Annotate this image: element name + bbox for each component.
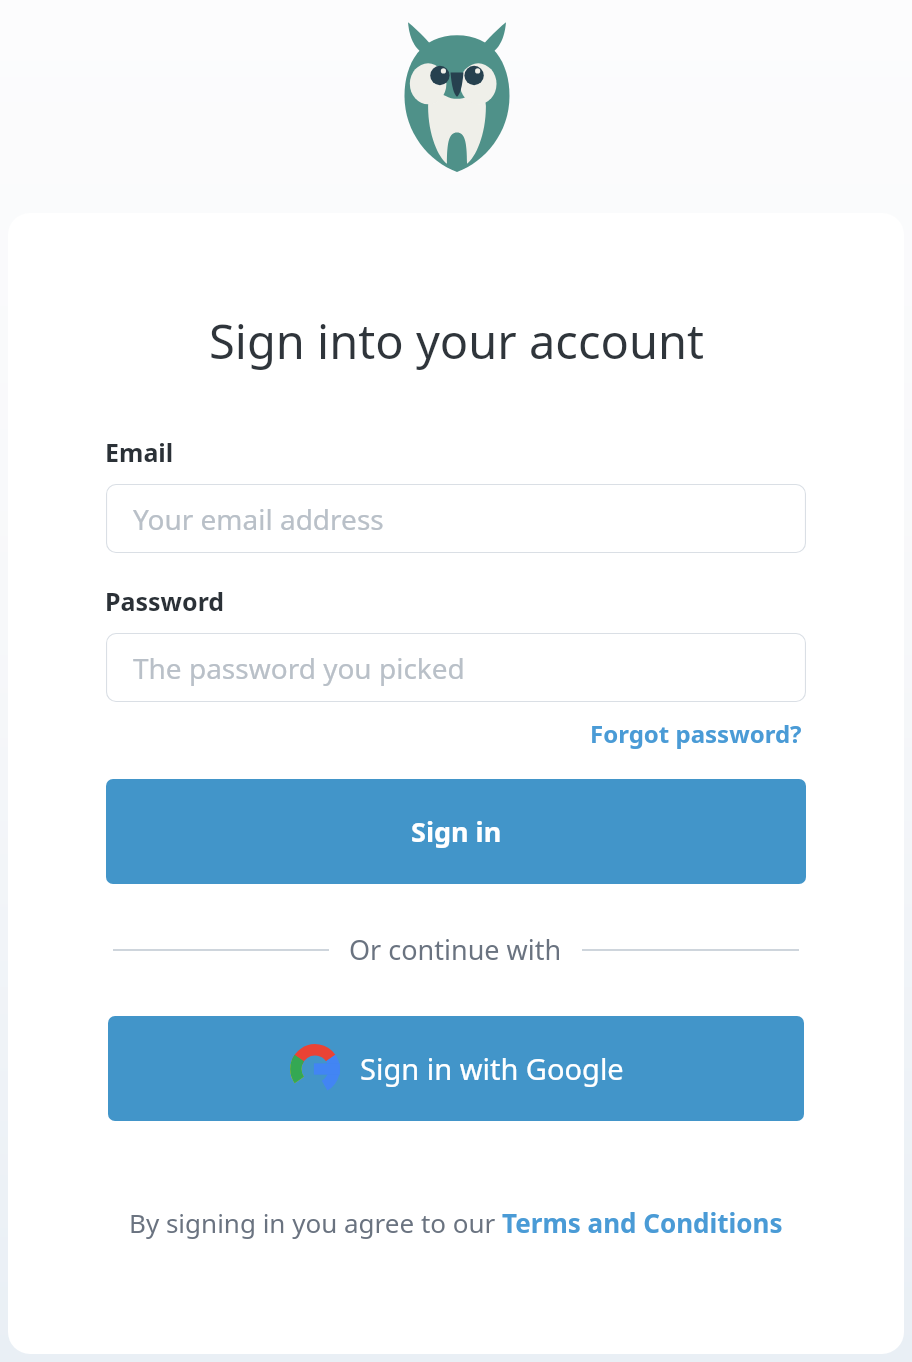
button[interactable]: By signing in you agree to our Terms and… [125, 1201, 787, 1244]
button[interactable]: Password input [106, 633, 806, 702]
staticText: The password you picked [133, 649, 465, 687]
staticText: Sign in [411, 813, 502, 850]
button[interactable]: Email input [106, 484, 806, 553]
staticText: Password [105, 584, 225, 618]
staticText: Sign into your account [209, 309, 704, 373]
staticText: Email [105, 435, 174, 469]
button[interactable]: Sign in with Google [108, 1016, 804, 1121]
other: App logo [398, 20, 516, 172]
staticText: By signing in you agree to our Terms and… [129, 1205, 783, 1240]
button[interactable]: Forgot password? [587, 714, 805, 753]
staticText: Sign in with Google [360, 1049, 624, 1088]
staticText: Or continue with [349, 931, 562, 968]
button[interactable]: Sign in [106, 779, 806, 884]
staticText: Your email address [133, 500, 384, 538]
staticText: Forgot password? [590, 717, 802, 750]
